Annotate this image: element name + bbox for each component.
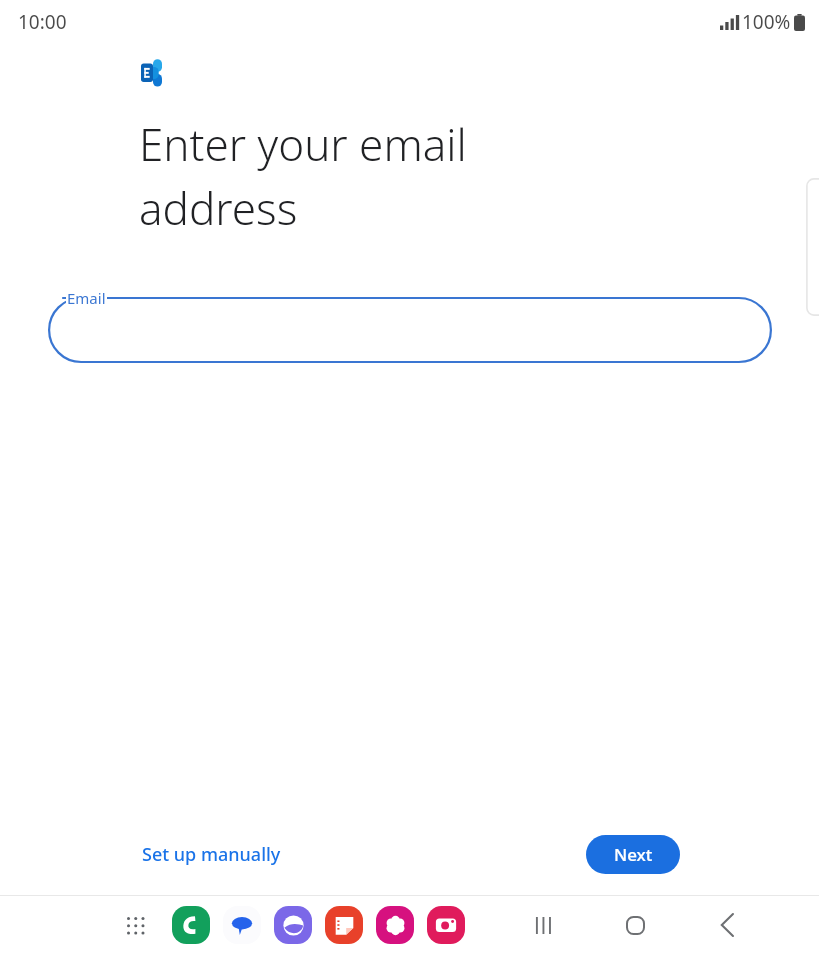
button[interactable]: Set up manually xyxy=(140,832,283,877)
staticText: Enter your email address xyxy=(139,114,467,238)
button[interactable]: Notes xyxy=(325,906,363,944)
button[interactable]: Messages xyxy=(223,906,261,944)
other: Exchange xyxy=(138,58,168,88)
button[interactable]: Home xyxy=(613,903,657,947)
staticText: Next xyxy=(614,843,653,866)
button[interactable]: Email xyxy=(48,280,772,364)
button[interactable]: Gallery xyxy=(376,906,414,944)
button[interactable]: Camera xyxy=(427,906,465,944)
button[interactable]: Internet xyxy=(274,906,312,944)
button[interactable]: Recents xyxy=(521,903,565,947)
staticText: 100% xyxy=(742,9,791,35)
button[interactable]: Apps xyxy=(120,910,150,940)
button[interactable]: Back xyxy=(705,903,749,947)
staticText: Email xyxy=(67,288,106,308)
staticText: 10:00 xyxy=(18,9,67,35)
staticText: Set up manually xyxy=(142,842,281,867)
button[interactable]: Next xyxy=(586,835,680,874)
button[interactable]: Phone xyxy=(172,906,210,944)
